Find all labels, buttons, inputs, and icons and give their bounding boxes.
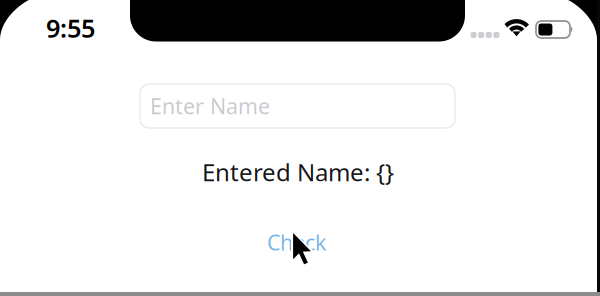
button[interactable]: Enter Name [140, 84, 455, 128]
staticText: Check [267, 228, 326, 256]
staticText: Enter Name [150, 92, 270, 120]
staticText: Entered Name: {} [202, 156, 394, 188]
button[interactable]: Check [267, 228, 326, 256]
staticText: 9:55 [46, 11, 95, 45]
